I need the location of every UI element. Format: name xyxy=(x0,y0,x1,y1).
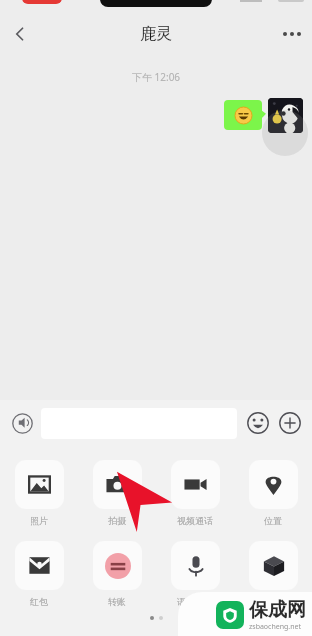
button[interactable]: More functions xyxy=(275,408,305,438)
button[interactable]: 我的收藏 xyxy=(234,539,312,609)
button[interactable]: 视频通话 xyxy=(156,458,234,528)
staticText: 语音输入 xyxy=(177,596,213,607)
staticText: 拍摄 xyxy=(108,515,126,526)
button[interactable]: 位置 xyxy=(234,458,312,528)
button[interactable]: 语音输入 xyxy=(156,539,234,609)
button[interactable] xyxy=(224,100,262,130)
button[interactable]: Emoji xyxy=(243,408,273,438)
staticText: 视频通话 xyxy=(177,515,213,526)
button[interactable]: Contact avatar xyxy=(268,98,303,133)
staticText: 转账 xyxy=(108,596,126,607)
staticText: zsbaocheng.net xyxy=(249,622,302,632)
button[interactable]: Back xyxy=(0,14,40,54)
button[interactable]: More options xyxy=(272,14,312,54)
staticText: 位置 xyxy=(264,515,282,526)
button[interactable]: 照片 xyxy=(0,458,78,528)
button[interactable]: Voice message xyxy=(7,408,37,438)
button[interactable]: 拍摄 xyxy=(78,458,156,528)
staticText: 我的收藏 xyxy=(255,596,291,607)
button[interactable]: 红包 xyxy=(0,539,78,609)
staticText: 鹿灵 xyxy=(140,24,172,44)
staticText: 照片 xyxy=(30,515,48,526)
staticText: 保成网 xyxy=(249,598,306,622)
button[interactable]: 转账 xyxy=(78,539,156,609)
staticText: 下午 12:06 xyxy=(0,70,312,84)
staticText: 红包 xyxy=(30,596,48,607)
